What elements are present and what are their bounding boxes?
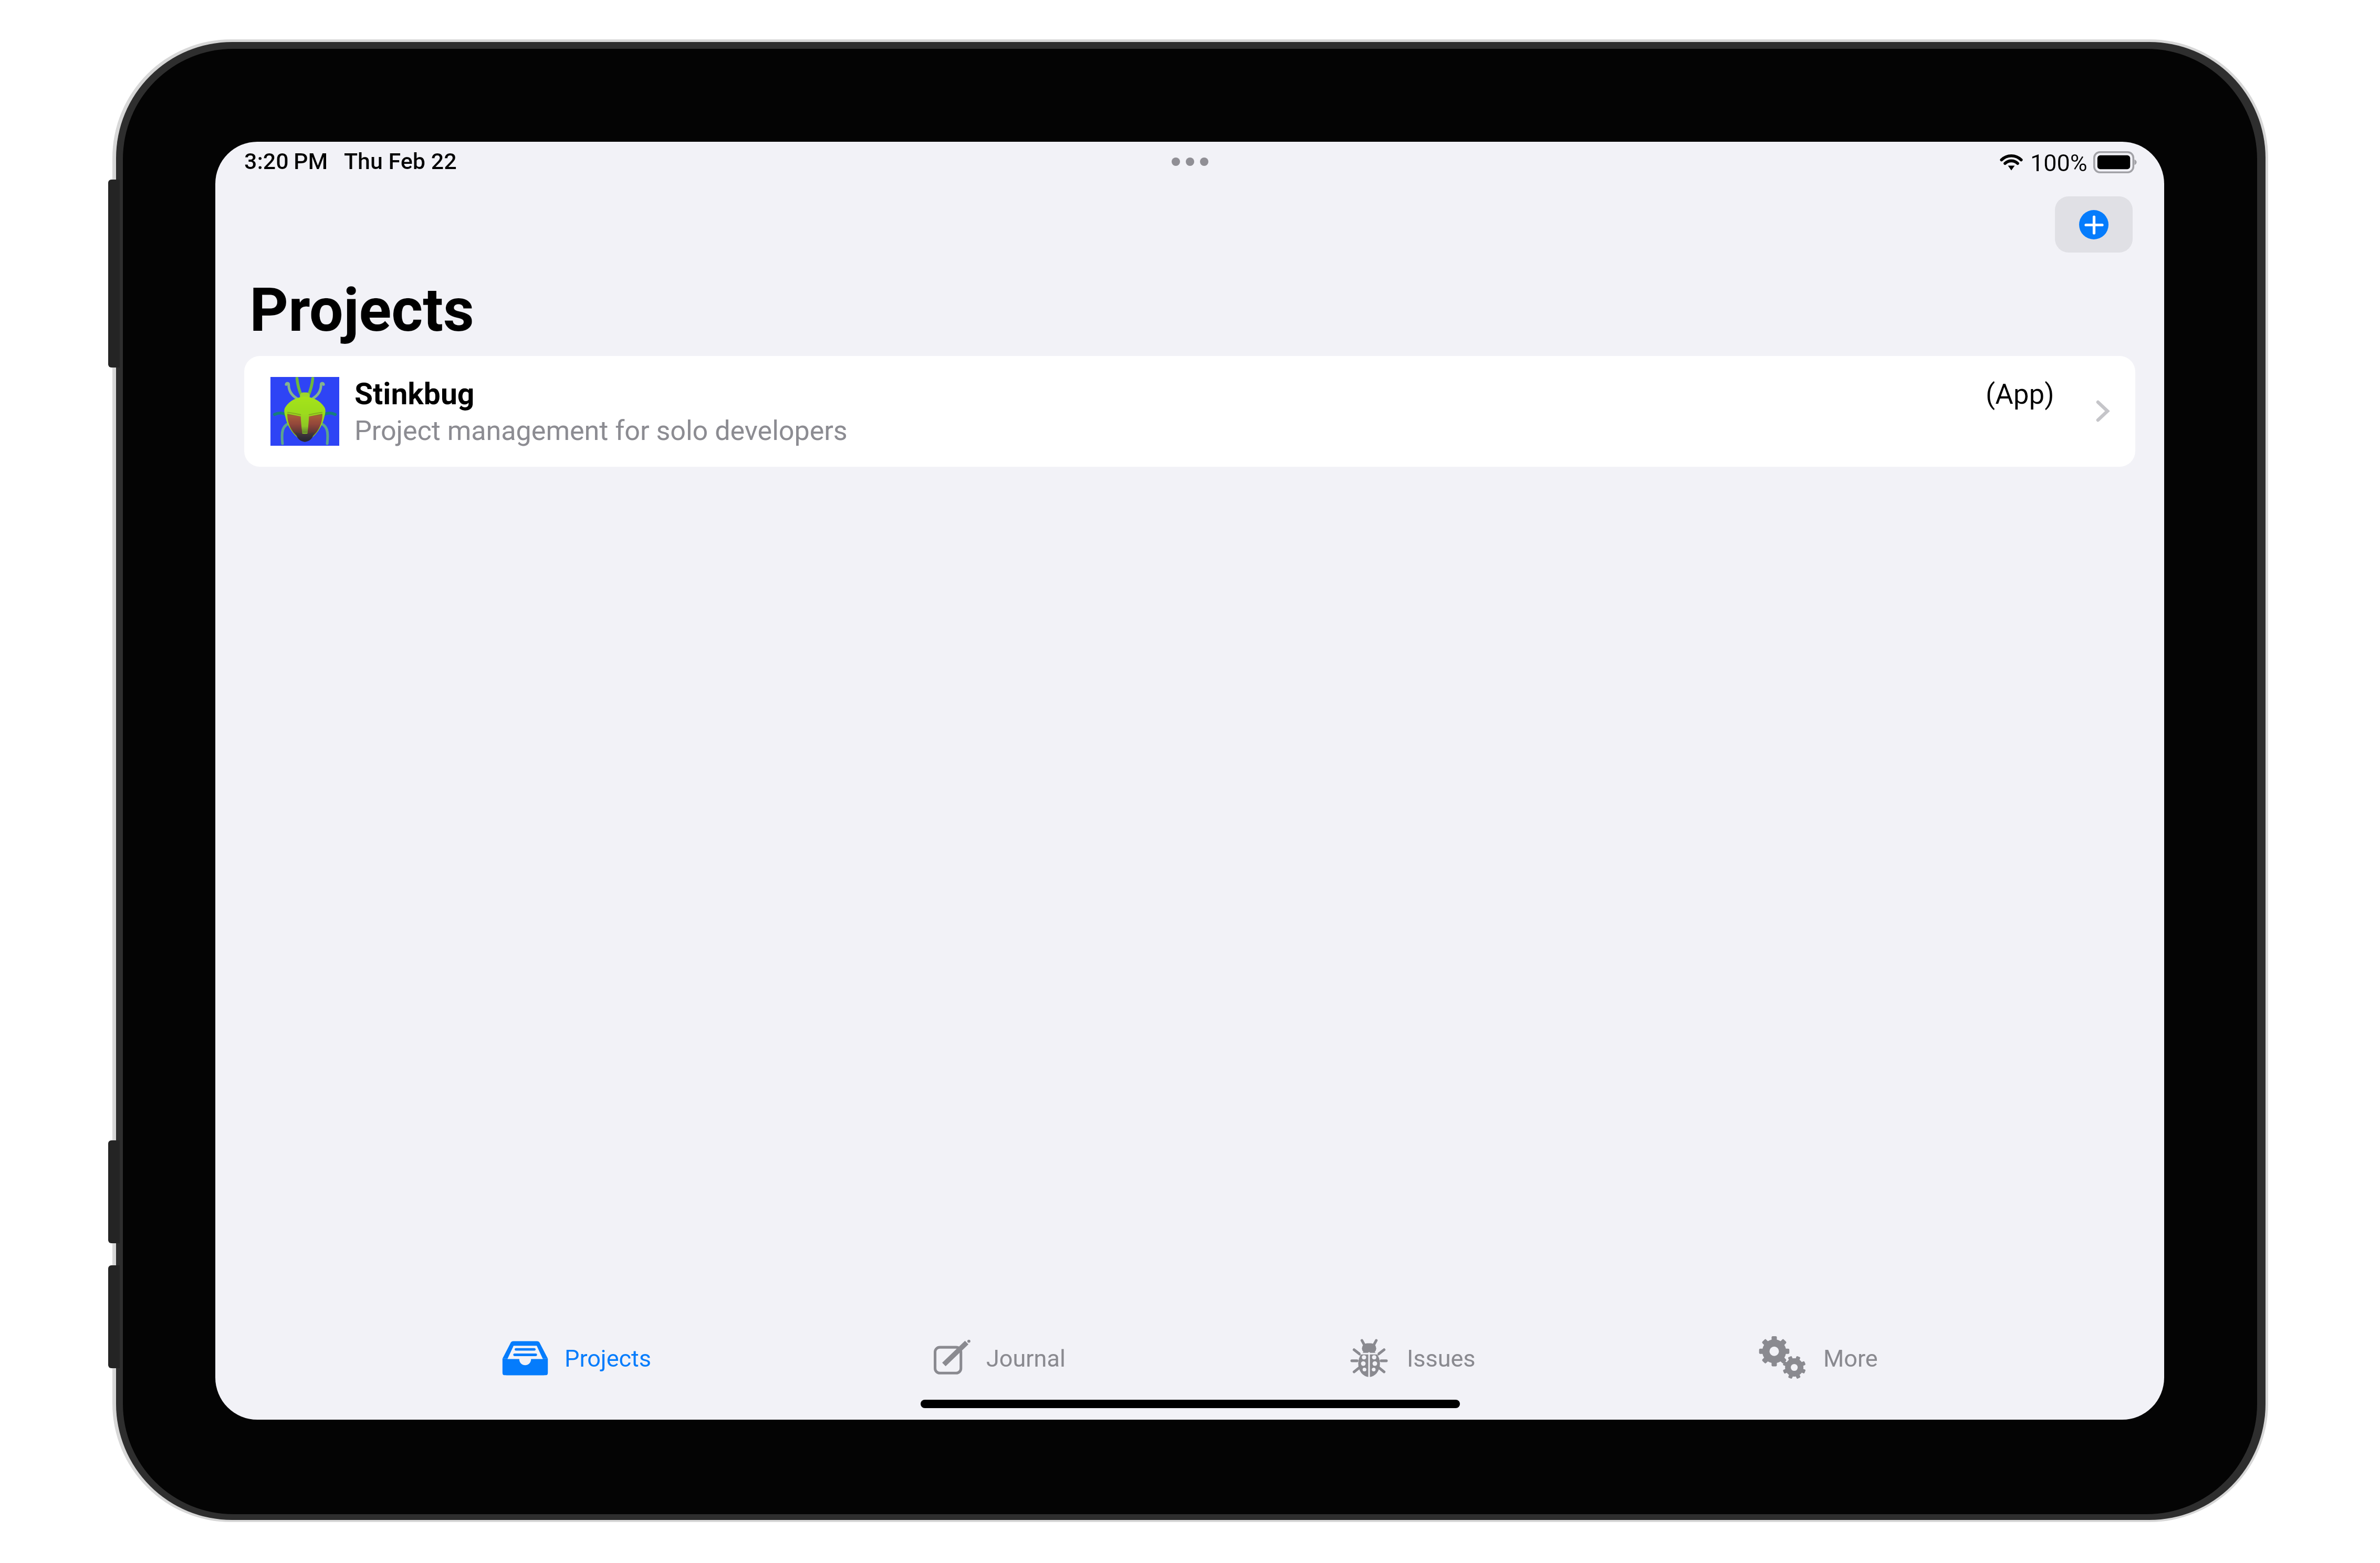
button[interactable]: More <box>1756 1325 1878 1392</box>
staticText: Journal <box>986 1345 1066 1372</box>
staticText: More <box>1823 1345 1878 1372</box>
button[interactable]: Issues <box>1346 1325 1476 1392</box>
staticText: 100% <box>2030 149 2087 177</box>
button[interactable]: Stinkbug <box>244 356 2135 467</box>
staticText: Project management for solo developers <box>354 415 848 447</box>
staticText: Stinkbug <box>354 376 475 412</box>
staticText: Projects <box>565 1345 651 1372</box>
staticText: Thu Feb 22 <box>344 148 457 174</box>
staticText: (App) <box>1986 378 2054 411</box>
button[interactable]: Projects <box>502 1325 651 1392</box>
staticText: PM <box>294 148 328 174</box>
staticText: Issues <box>1407 1345 1476 1372</box>
staticText: Projects <box>249 275 474 345</box>
button[interactable]: Add project <box>2055 196 2133 253</box>
staticText: 3:20 <box>244 148 289 174</box>
button[interactable]: Journal <box>932 1325 1066 1392</box>
